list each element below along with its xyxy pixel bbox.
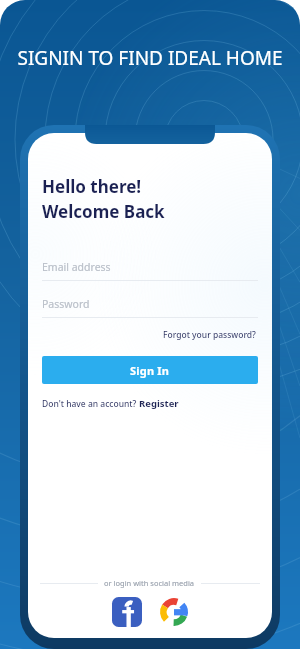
staticText: Forgot your password? <box>163 329 256 341</box>
staticText: Welcome Back <box>42 200 165 223</box>
button[interactable]: Forgot your password? <box>161 326 258 344</box>
button[interactable]: Sign in with Google <box>159 597 189 627</box>
button[interactable]: Email address <box>28 260 272 281</box>
button[interactable]: Sign In <box>42 356 258 384</box>
staticText: Register <box>139 397 179 410</box>
staticText: Hello there! <box>42 175 142 198</box>
button[interactable]: Register <box>139 397 179 410</box>
staticText: Email address <box>42 260 111 274</box>
staticText: SIGNIN TO FIND IDEAL HOME <box>5 45 295 71</box>
staticText: Don't have an account? <box>42 398 139 410</box>
button[interactable]: Sign in with Facebook <box>112 597 142 627</box>
button[interactable]: Password <box>28 297 272 318</box>
staticText: or login with social media <box>104 578 195 588</box>
staticText: Password <box>42 297 90 311</box>
staticText: Sign In <box>130 363 170 378</box>
